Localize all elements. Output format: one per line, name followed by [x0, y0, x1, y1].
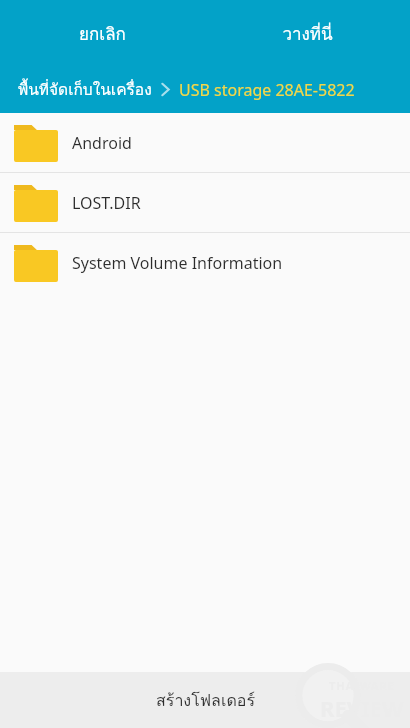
button[interactable]: USB storage 28AE-5822: [179, 79, 355, 101]
button[interactable]: LOST.DIR: [0, 173, 410, 232]
button[interactable]: วางที่นี่: [205, 0, 410, 66]
staticText: USB storage 28AE-5822: [179, 79, 355, 101]
staticText: LOST.DIR: [72, 192, 141, 214]
staticText: พื้นที่จัดเก็บในเครื่อง: [18, 77, 152, 102]
button[interactable]: ยกเลิก: [0, 0, 205, 66]
button[interactable]: สร้างโฟลเดอร์: [0, 672, 410, 728]
staticText: System Volume Information: [72, 252, 283, 274]
button[interactable]: System Volume Information: [0, 233, 410, 293]
staticText: สร้างโฟลเดอร์: [156, 688, 255, 713]
staticText: วางที่นี่: [282, 20, 333, 47]
button[interactable]: พื้นที่จัดเก็บในเครื่อง: [18, 77, 152, 102]
button[interactable]: Android: [0, 113, 410, 172]
staticText: ยกเลิก: [79, 20, 126, 47]
staticText: Android: [72, 132, 132, 154]
